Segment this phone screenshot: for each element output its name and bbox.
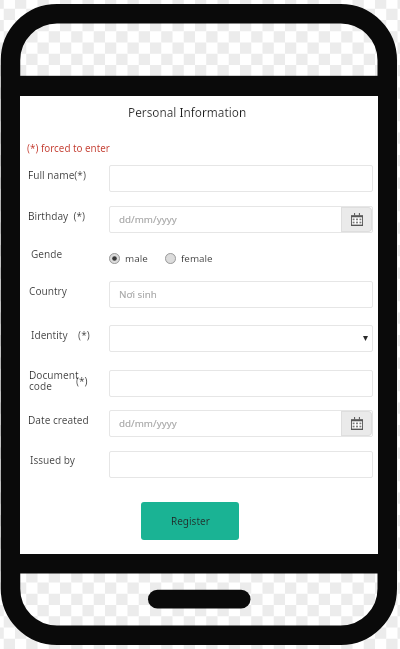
button[interactable]: Full name xyxy=(109,165,373,192)
staticText: dd/mm/yyyy xyxy=(119,213,177,226)
staticText: Country xyxy=(29,284,67,298)
button[interactable]: Pick date xyxy=(341,411,372,436)
staticText: Personal Information xyxy=(128,104,247,120)
button[interactable]: Birthday xyxy=(109,206,373,233)
staticText: Register xyxy=(171,514,210,528)
staticText: Nơi sinh xyxy=(119,288,157,301)
staticText: Document code xyxy=(29,368,79,393)
button[interactable]: Register xyxy=(141,502,239,540)
staticText: Full name(*) xyxy=(28,168,86,182)
button[interactable]: Issued by xyxy=(109,451,373,478)
staticText: Issued by xyxy=(30,453,76,467)
button[interactable]: Country xyxy=(109,281,373,308)
button[interactable]: female xyxy=(165,252,213,265)
staticText: female xyxy=(181,252,213,265)
staticText: Birthday (*) xyxy=(28,209,86,223)
button[interactable]: Date created xyxy=(109,410,373,437)
staticText: Identity (*) xyxy=(31,328,90,342)
button[interactable]: Identity xyxy=(109,325,373,352)
staticText: Gende xyxy=(31,247,63,261)
button[interactable]: male xyxy=(109,252,148,265)
staticText: dd/mm/yyyy xyxy=(119,417,177,430)
button[interactable]: Document code xyxy=(109,370,373,397)
staticText: Date created xyxy=(28,413,89,427)
button[interactable]: Pick date xyxy=(341,207,372,232)
staticText: (*) xyxy=(76,374,88,388)
staticText: male xyxy=(125,252,148,265)
staticText: (*) forced to enter xyxy=(27,141,110,154)
